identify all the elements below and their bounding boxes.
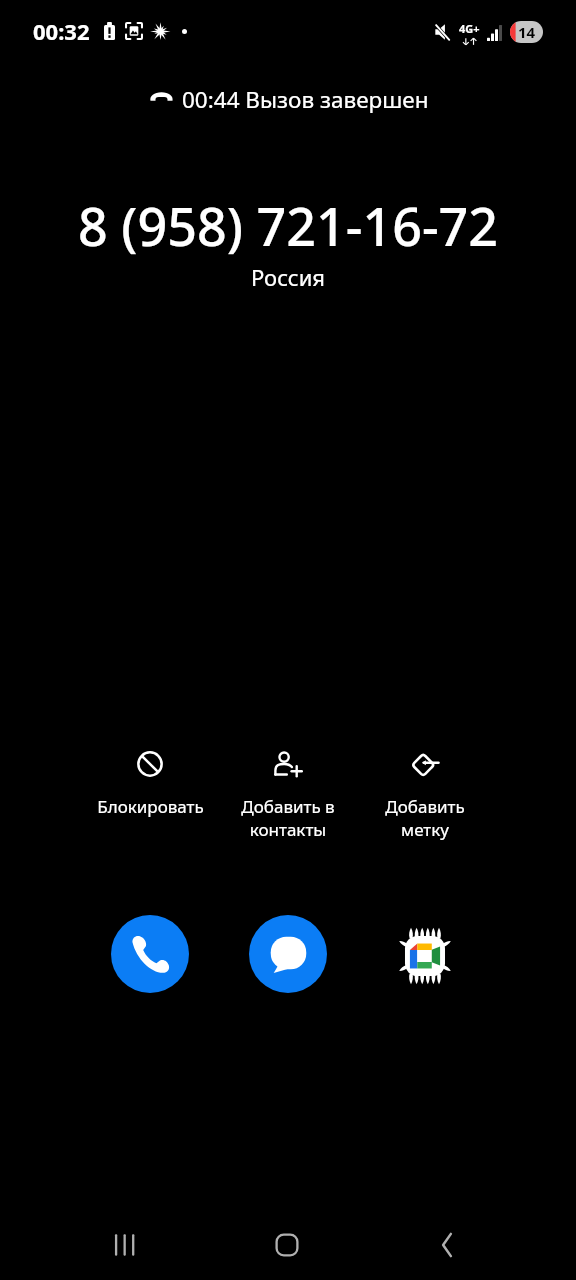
button[interactable]: Back xyxy=(420,1218,474,1272)
staticText: Добавить в контакты xyxy=(241,795,335,841)
button[interactable]: Recents xyxy=(98,1218,152,1272)
button[interactable]: Добавить в контакты xyxy=(219,749,357,841)
staticText: 00:32 xyxy=(33,16,90,46)
staticText: Добавить метку xyxy=(385,795,465,841)
button[interactable]: Блокировать xyxy=(81,749,219,818)
button[interactable]: Call xyxy=(111,915,189,993)
staticText: 8 (958) 721-16-72 xyxy=(78,190,499,261)
button[interactable]: Добавить метку xyxy=(356,749,494,841)
button[interactable]: Video call xyxy=(390,921,460,991)
staticText: 00:44 Вызов завершен xyxy=(182,84,429,115)
staticText: 4G+ xyxy=(459,21,480,36)
staticText: Блокировать xyxy=(97,795,204,818)
button[interactable]: Home xyxy=(260,1218,314,1272)
staticText: Россия xyxy=(251,262,325,292)
button[interactable]: Message xyxy=(249,915,327,993)
staticText: 14 xyxy=(518,22,536,42)
